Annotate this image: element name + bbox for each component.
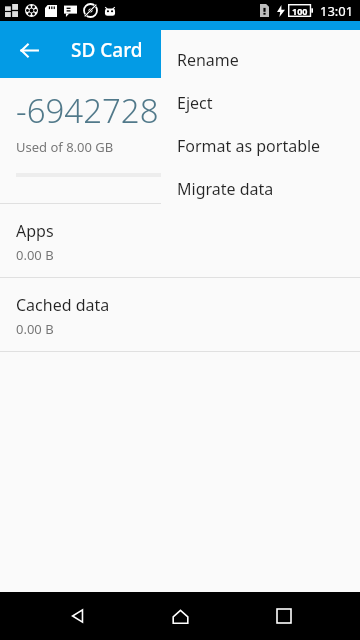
staticText: 13:01: [320, 2, 354, 20]
staticText: 100: [292, 5, 308, 17]
staticText: -6942728: [16, 88, 159, 133]
button[interactable]: Cached data: [0, 278, 360, 351]
button[interactable]: Migrate data: [161, 167, 360, 210]
staticText: Apps: [16, 220, 54, 242]
staticText: Used of 8.00 GB: [16, 138, 114, 156]
staticText: Eject: [177, 92, 213, 114]
button[interactable]: Apps: [0, 204, 360, 277]
button[interactable]: Recent apps: [266, 598, 302, 634]
button[interactable]: Back: [60, 598, 96, 634]
staticText: Cached data: [16, 294, 110, 316]
staticText: Format as portable: [177, 135, 321, 157]
button[interactable]: Navigate up: [12, 33, 46, 67]
staticText: SD Card: [71, 37, 143, 63]
button[interactable]: Rename: [161, 38, 360, 81]
button[interactable]: Eject: [161, 81, 360, 124]
staticText: Migrate data: [177, 178, 274, 200]
staticText: Rename: [177, 49, 239, 71]
staticText: 0.00 B: [16, 320, 54, 338]
staticText: 0.00 B: [16, 246, 54, 264]
button[interactable]: Home: [162, 598, 198, 634]
button[interactable]: Format as portable: [161, 124, 360, 167]
